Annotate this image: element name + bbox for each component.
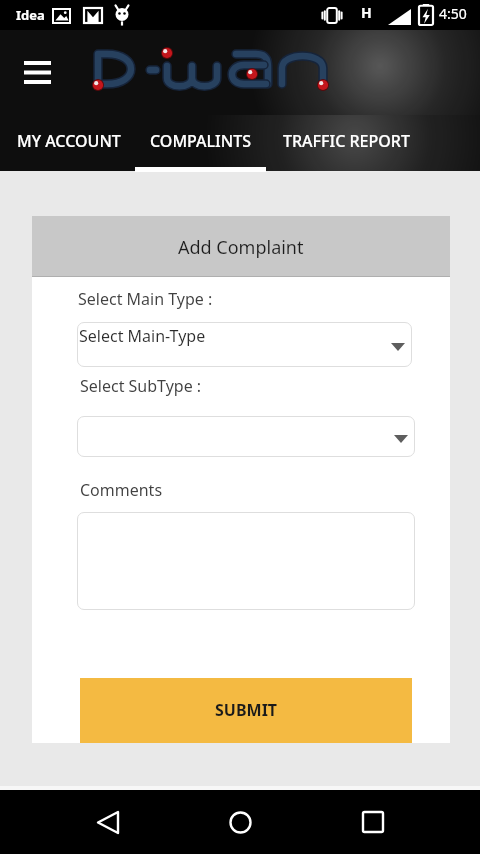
staticText: TRAFFIC REPORT — [283, 130, 410, 152]
button[interactable]: COMPALINTS — [135, 115, 266, 172]
button[interactable]: TRAFFIC REPORT — [263, 115, 430, 172]
staticText: Idea — [16, 6, 45, 24]
button[interactable]: Home — [214, 796, 266, 848]
staticText: Select Main-Type — [79, 325, 206, 347]
button[interactable]: Recent apps — [347, 796, 399, 848]
staticText: MY ACCOUNT — [17, 130, 121, 152]
button[interactable]: Select Main-Type — [77, 322, 412, 367]
staticText: Add Complaint — [178, 235, 304, 260]
button[interactable]: Back — [81, 796, 133, 848]
staticText: H — [361, 3, 372, 22]
button[interactable]: Open navigation menu — [14, 49, 60, 95]
button[interactable]: Comments input — [77, 512, 415, 610]
staticText: Comments — [80, 479, 163, 501]
staticText: SUBMIT — [215, 699, 278, 721]
staticText: Select SubType : — [80, 375, 202, 397]
button[interactable]: SUBMIT — [80, 678, 412, 743]
staticText: Select Main Type : — [78, 288, 213, 310]
button[interactable]: Select subtype dropdown — [77, 416, 415, 457]
button[interactable]: MY ACCOUNT — [0, 115, 137, 172]
staticText: COMPALINTS — [150, 130, 251, 152]
staticText: 4:50 — [439, 4, 467, 23]
